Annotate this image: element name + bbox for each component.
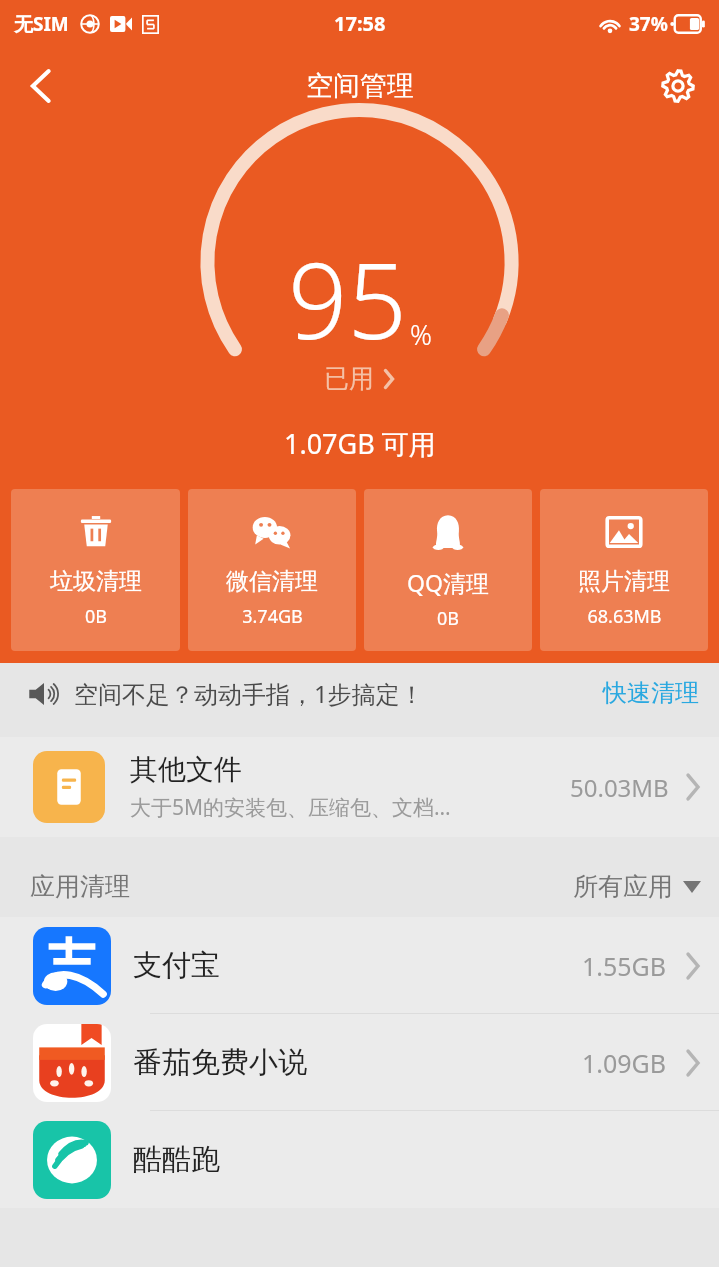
staticText: 应用清理 xyxy=(30,871,130,902)
button[interactable]: Back xyxy=(10,55,72,117)
button[interactable]: QQ清理 xyxy=(364,489,532,651)
staticText: 3.74GB xyxy=(242,604,303,629)
button[interactable]: 照片清理 xyxy=(540,489,708,651)
staticText: 已用 xyxy=(324,363,374,394)
button[interactable]: 垃圾清理 xyxy=(11,489,180,651)
staticText: 95 xyxy=(288,228,407,370)
button[interactable]: 所有应用 xyxy=(573,871,701,902)
staticText: 支付宝 xyxy=(133,947,582,984)
staticText: 照片清理 xyxy=(578,567,670,596)
staticText: 空间不足？动动手指，1步搞定！ xyxy=(74,677,424,710)
button[interactable]: 其他文件 xyxy=(0,737,719,837)
button[interactable]: 支付宝 xyxy=(0,917,719,1014)
button[interactable]: 微信清理 xyxy=(188,489,356,651)
button[interactable]: Settings xyxy=(649,57,707,115)
staticText: 垃圾清理 xyxy=(50,567,142,596)
staticText: 1.07GB 可用 xyxy=(284,425,436,462)
staticText: 0B xyxy=(85,604,107,629)
button[interactable]: 酷酷跑 xyxy=(0,1111,719,1208)
staticText: 无SIM xyxy=(14,11,69,37)
staticText: 酷酷跑 xyxy=(133,1141,719,1178)
staticText: 50.03MB xyxy=(570,771,669,804)
staticText: 所有应用 xyxy=(573,871,673,902)
staticText: 大于5M的安装包、压缩包、文档… xyxy=(130,793,451,822)
staticText: 其他文件 xyxy=(130,752,242,787)
staticText: 68.63MB xyxy=(587,604,662,629)
staticText: 快速清理 xyxy=(603,678,699,708)
staticText: 微信清理 xyxy=(226,567,318,596)
button[interactable]: 已用 xyxy=(324,363,396,394)
staticText: 1.55GB xyxy=(582,949,667,983)
staticText: 空间管理 xyxy=(306,69,414,103)
staticText: 番茄免费小说 xyxy=(133,1044,582,1081)
staticText: 17:58 xyxy=(334,10,386,37)
staticText: % xyxy=(410,316,432,353)
staticText: 0B xyxy=(437,606,459,631)
button[interactable]: 番茄免费小说 xyxy=(0,1014,719,1111)
button[interactable]: 快速清理 xyxy=(599,672,703,714)
staticText: 37% xyxy=(629,11,668,37)
staticText: QQ清理 xyxy=(407,567,489,598)
staticText: 1.09GB xyxy=(582,1046,667,1080)
